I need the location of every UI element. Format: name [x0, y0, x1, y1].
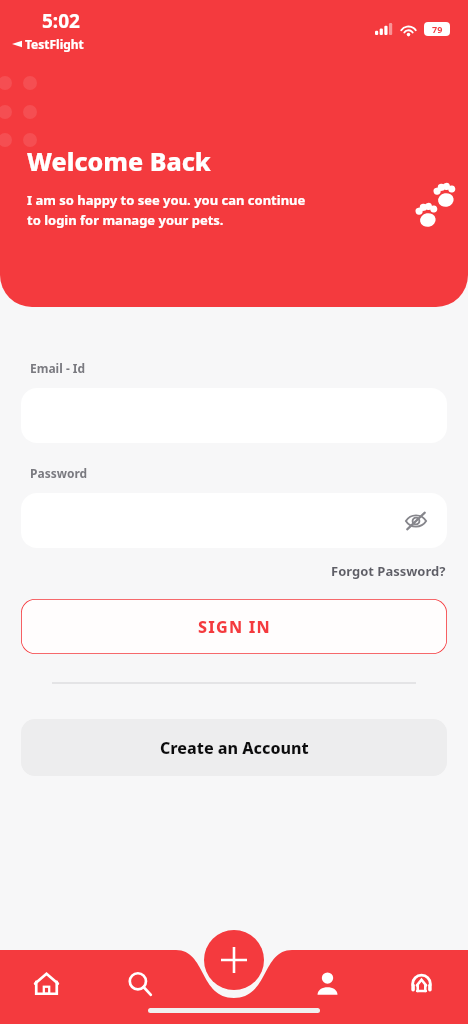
- staticText: 5:02: [42, 8, 80, 34]
- button[interactable]: Add: [204, 930, 264, 990]
- staticText: TestFlight: [25, 36, 84, 52]
- button[interactable]: SIGN IN: [21, 599, 447, 654]
- staticText: Create an Account: [160, 737, 309, 759]
- staticText: 79: [432, 23, 443, 35]
- staticText: Welcome Back: [27, 144, 211, 178]
- button[interactable]: Profile: [280, 959, 374, 1007]
- staticText: Password: [30, 465, 88, 481]
- button[interactable]: Show password: [399, 504, 433, 538]
- staticText: I am so happy to see you. you can contin…: [27, 191, 306, 229]
- staticText: SIGN IN: [198, 616, 271, 638]
- button[interactable]: Create an Account: [21, 719, 447, 776]
- button[interactable]: Search: [93, 959, 186, 1007]
- staticText: Forgot Password?: [331, 562, 446, 580]
- button[interactable]: Show password: [21, 493, 447, 548]
- button[interactable]: Forgot Password?: [331, 562, 446, 580]
- staticText: Email - Id: [30, 360, 86, 376]
- button[interactable]: Support: [374, 959, 468, 1007]
- button[interactable]: Home: [0, 959, 93, 1007]
